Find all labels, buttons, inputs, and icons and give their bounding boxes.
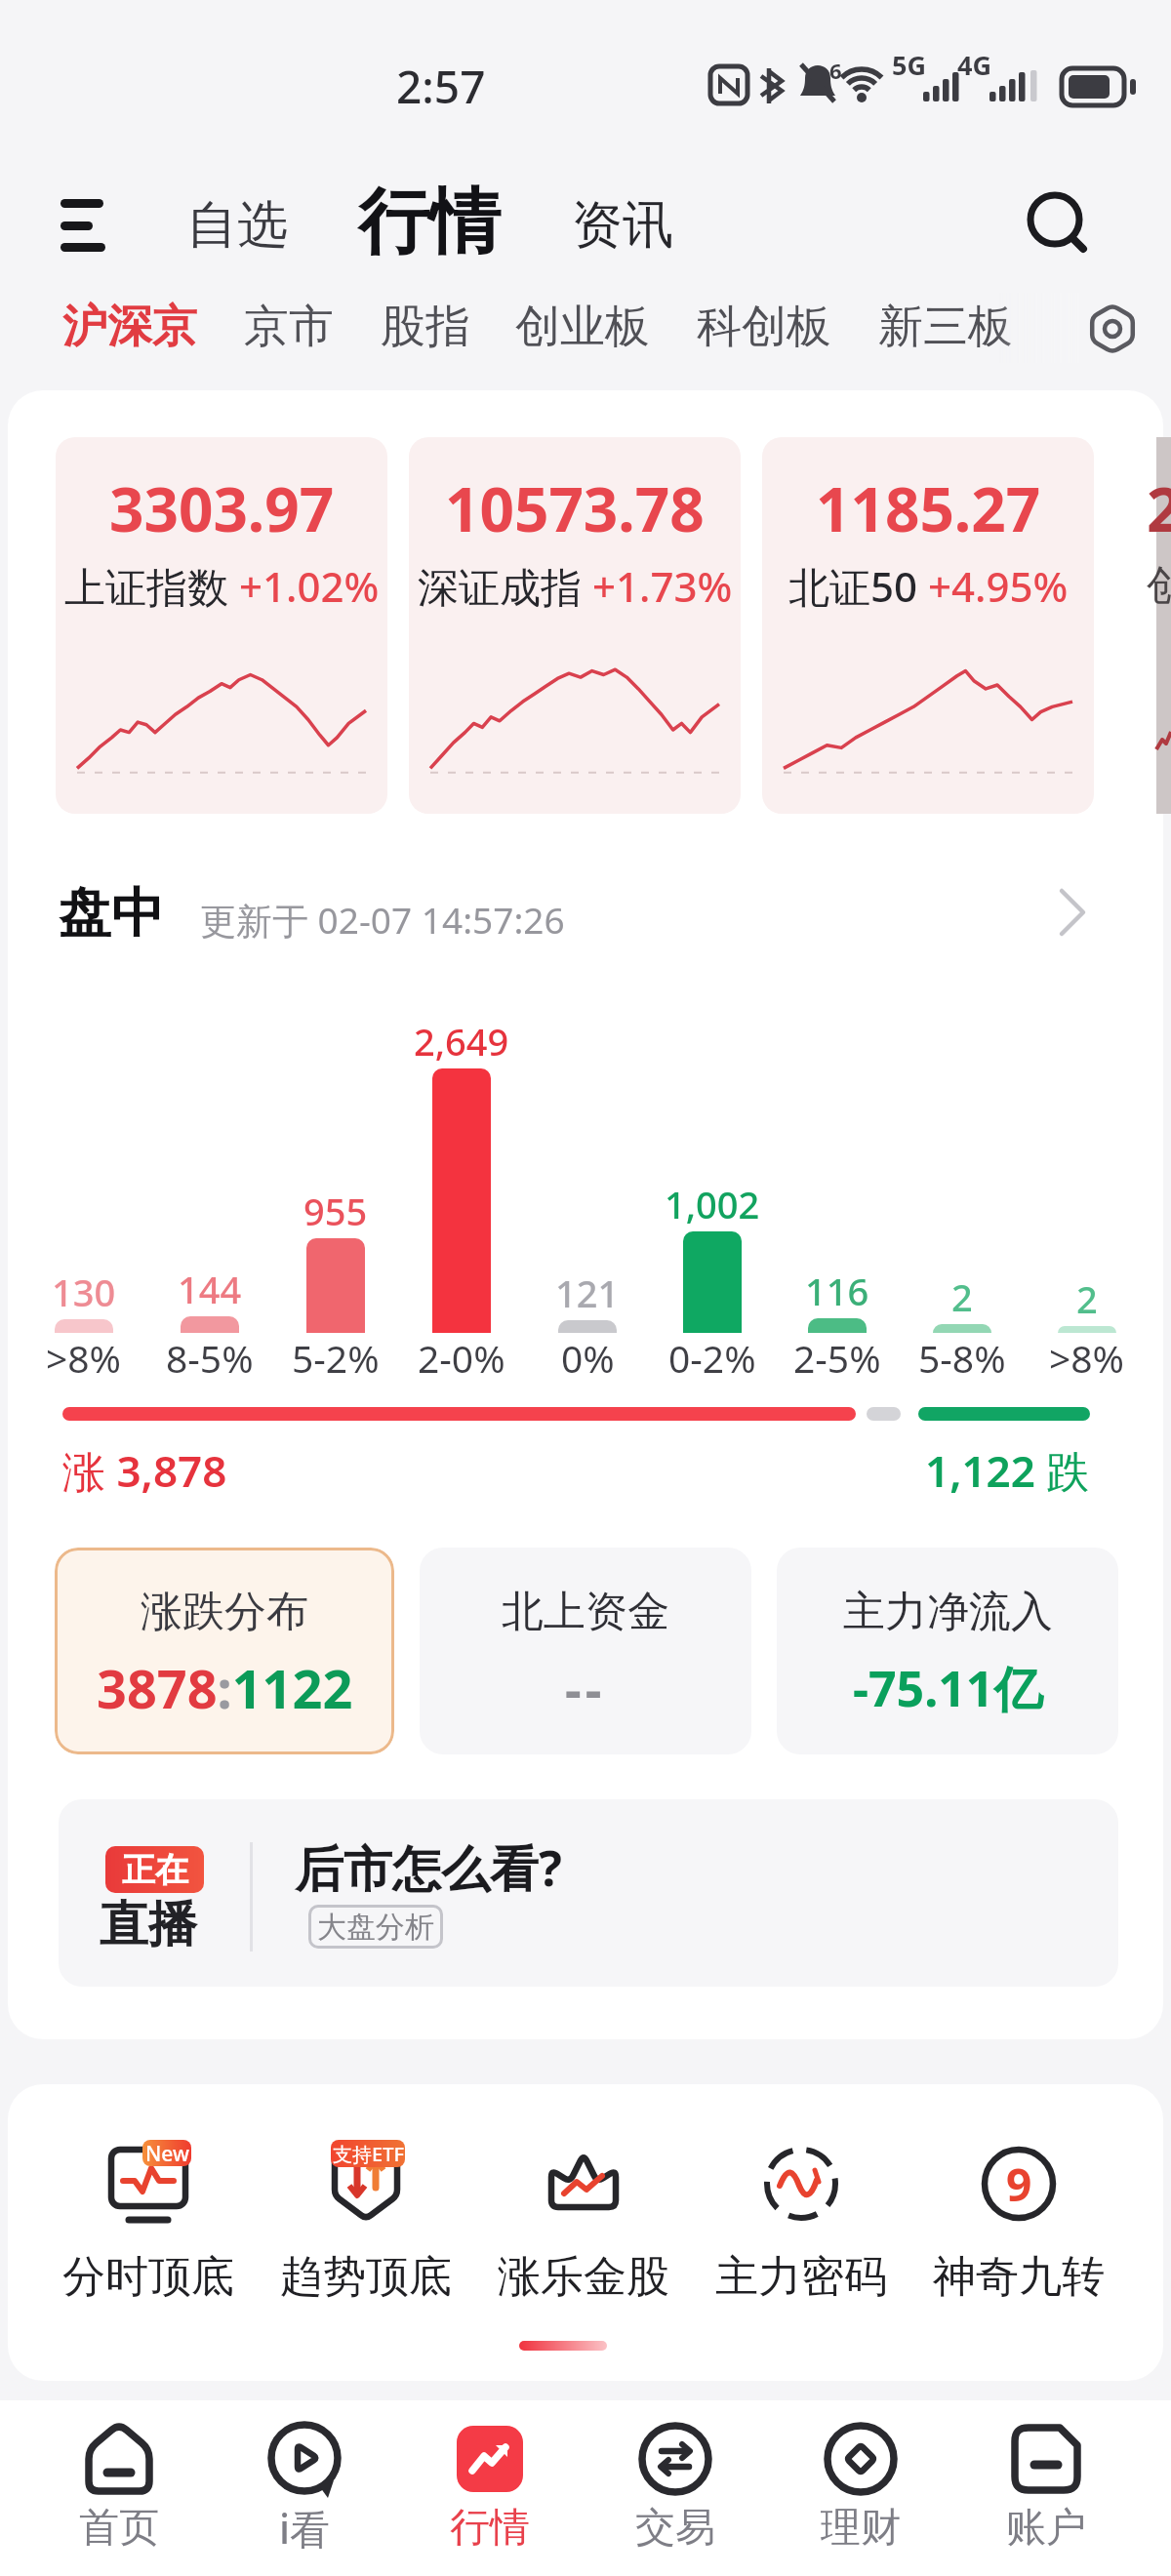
staticText: 神奇九转	[933, 2250, 1105, 2304]
staticText: 分时顶底	[62, 2250, 234, 2304]
staticText: 121	[555, 1268, 620, 1318]
staticText: 9	[1006, 2153, 1032, 2215]
staticText: 自选	[186, 193, 288, 258]
staticText: i看	[279, 2501, 331, 2556]
button[interactable]	[777, 1548, 1118, 1754]
staticText: 130	[52, 1267, 116, 1317]
staticText: 北证50 +4.95%	[788, 558, 1069, 614]
staticText: 行情	[450, 2503, 530, 2554]
button[interactable]: 创业板	[511, 293, 654, 361]
staticText: 股指	[381, 299, 470, 355]
button[interactable]	[351, 171, 512, 278]
staticText: 京市	[244, 299, 334, 355]
staticText: 2	[1147, 467, 1171, 549]
staticText: 后市怎么看?	[295, 1834, 562, 1901]
staticText: 2-0%	[418, 1332, 505, 1384]
staticText: 8-5%	[166, 1332, 254, 1384]
staticText: 交易	[635, 2503, 715, 2554]
staticText: 0-2%	[668, 1332, 756, 1384]
staticText: 主力密码	[715, 2250, 887, 2304]
button[interactable]	[486, 2117, 681, 2322]
button[interactable]	[1015, 181, 1103, 268]
button[interactable]: 科创板	[693, 293, 835, 361]
staticText: 大盘分析	[317, 1909, 434, 1946]
staticText: 沪深京	[62, 299, 197, 355]
staticText: 2	[951, 1271, 973, 1322]
button[interactable]	[958, 2402, 1134, 2568]
button[interactable]	[1073, 291, 1153, 369]
staticText: 1,002	[665, 1179, 760, 1229]
staticText: 账户	[1006, 2503, 1086, 2554]
button[interactable]	[773, 2402, 949, 2568]
staticText: 3303.97	[109, 467, 335, 549]
staticText: 1185.27	[816, 467, 1041, 549]
staticText: 直播	[100, 1894, 197, 1955]
staticText: 科创板	[697, 299, 831, 355]
staticText: 2,649	[414, 1016, 509, 1067]
staticText: 955	[303, 1186, 368, 1236]
button[interactable]	[587, 2402, 763, 2568]
button[interactable]	[704, 2117, 899, 2322]
staticText: 涨 3,878	[62, 1441, 227, 1500]
staticText: 1,122 跌	[925, 1441, 1090, 1500]
staticText: >8%	[46, 1332, 122, 1384]
staticText: 新三板	[878, 299, 1013, 355]
staticText: 创业板	[515, 299, 650, 355]
staticText: 北上资金	[502, 1586, 669, 1638]
button[interactable]	[402, 2402, 578, 2568]
staticText: 深证成指 +1.73%	[418, 558, 733, 614]
button[interactable]	[217, 2402, 392, 2568]
button[interactable]	[181, 176, 298, 273]
staticText: 首页	[79, 2503, 159, 2554]
staticText: 0%	[561, 1332, 615, 1384]
button[interactable]	[31, 2402, 207, 2568]
staticText: 行情	[358, 178, 501, 267]
button[interactable]	[268, 2117, 464, 2322]
button[interactable]	[56, 437, 387, 814]
button[interactable]: 沪深京	[59, 293, 201, 361]
button[interactable]	[420, 1548, 751, 1754]
staticText: 5G	[892, 47, 926, 83]
staticText: 上证指数 +1.02%	[64, 558, 380, 614]
button[interactable]	[762, 437, 1094, 814]
staticText: 理财	[821, 2503, 901, 2554]
staticText: 5-2%	[292, 1332, 380, 1384]
button[interactable]: 京市	[240, 293, 338, 361]
button[interactable]	[55, 1548, 394, 1754]
staticText: >8%	[1049, 1332, 1125, 1384]
staticText: 资讯	[572, 193, 673, 258]
button[interactable]	[49, 185, 127, 263]
staticText: 创	[1147, 560, 1171, 612]
button[interactable]: 股指	[377, 293, 474, 361]
staticText: 主力净流入	[843, 1586, 1053, 1638]
staticText: 正在	[122, 1849, 188, 1891]
staticText: 5-8%	[918, 1332, 1006, 1384]
button[interactable]	[566, 176, 683, 273]
staticText: 10573.78	[445, 467, 705, 549]
staticText: 2-5%	[793, 1332, 881, 1384]
staticText: 支持ETF	[333, 2141, 404, 2167]
button[interactable]	[921, 2117, 1116, 2322]
staticText: 4G	[957, 47, 991, 83]
staticText: New	[145, 2140, 189, 2166]
staticText: 6	[829, 56, 842, 85]
button[interactable]	[59, 1799, 1118, 1987]
staticText: 3878:1122	[97, 1652, 353, 1724]
staticText: 116	[805, 1266, 869, 1316]
staticText: 盘中	[59, 880, 164, 946]
staticText: 趋势顶底	[280, 2250, 452, 2304]
button[interactable]	[51, 2117, 246, 2322]
staticText: 2	[1076, 1273, 1098, 1324]
staticText: 2:57	[396, 56, 486, 117]
staticText: 更新于 02-07 14:57:26	[200, 895, 565, 945]
staticText: 涨跌分布	[141, 1586, 308, 1638]
staticText: -75.11亿	[853, 1655, 1043, 1721]
button[interactable]: 新三板	[874, 293, 1017, 361]
button[interactable]	[409, 437, 741, 814]
staticText: 144	[178, 1264, 242, 1314]
staticText: 涨乐金股	[498, 2250, 669, 2304]
staticText: --	[565, 1654, 606, 1723]
